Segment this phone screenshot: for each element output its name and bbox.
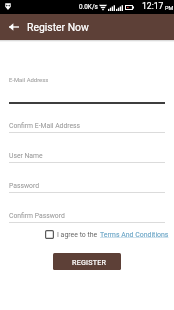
staticText: Confirm Password <box>9 212 65 220</box>
staticText: 12:17 <box>142 1 164 11</box>
button[interactable]: Terms And Conditions <box>100 231 169 239</box>
staticText: User Name <box>9 152 43 160</box>
button[interactable]: I agree to the terms checkbox <box>45 230 54 239</box>
staticText: Confirm E-Mail Address <box>9 122 81 130</box>
staticText: REGISTER <box>72 258 107 266</box>
staticText: 0.0K/s <box>79 3 98 11</box>
staticText: E-Mail Address <box>9 77 49 84</box>
staticText: Register Now <box>27 21 89 33</box>
staticText: Password <box>9 182 40 190</box>
button[interactable]: REGISTER <box>53 253 121 270</box>
button[interactable]: Back <box>0 14 24 40</box>
staticText: I agree to the <box>57 231 100 239</box>
staticText: PM <box>165 5 174 12</box>
